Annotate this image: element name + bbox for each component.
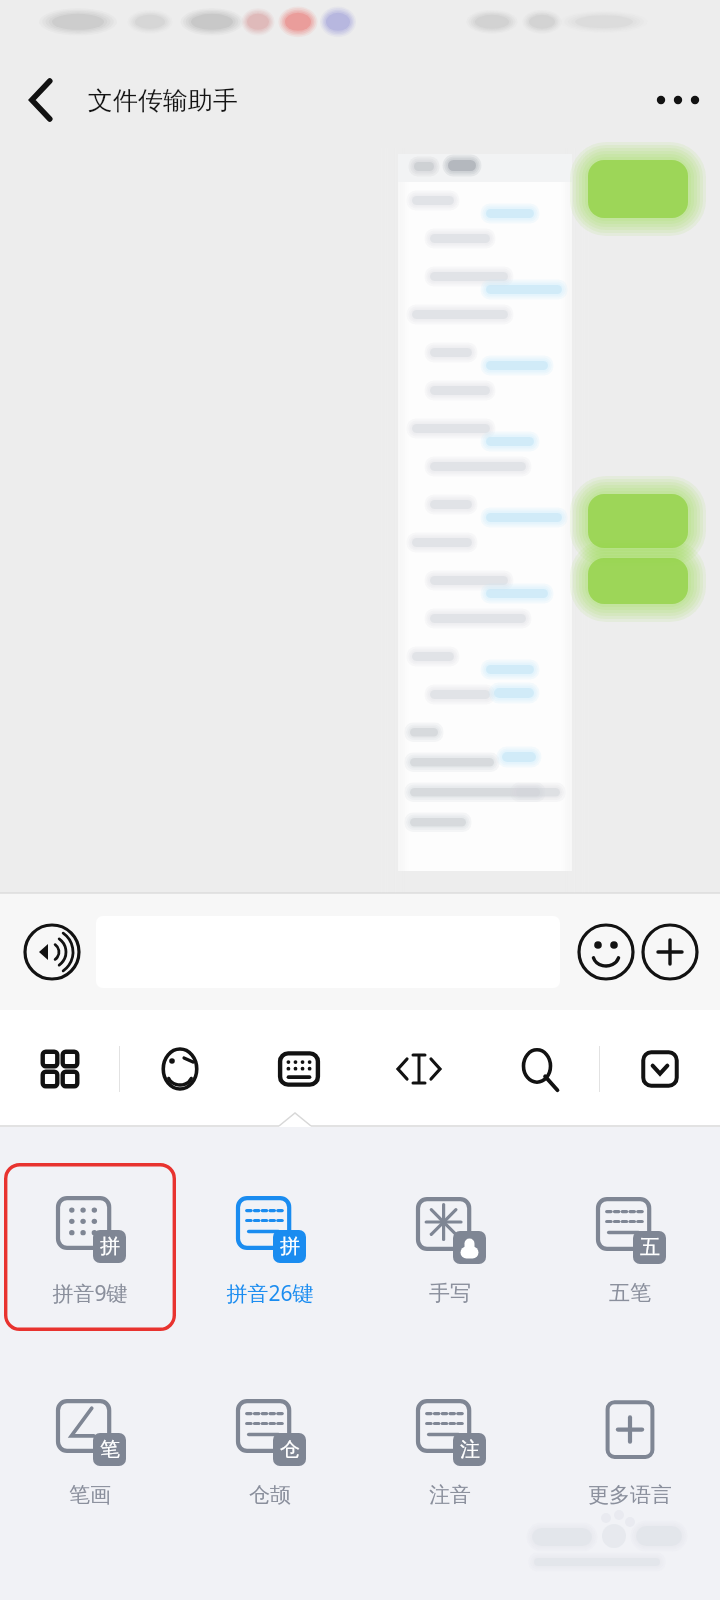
staticText: 五笔 — [609, 1280, 651, 1306]
staticText: 注音 — [429, 1482, 471, 1508]
staticText: 笔画 — [69, 1482, 111, 1508]
button[interactable]: Emoji — [574, 920, 638, 984]
staticText: 拼 — [280, 1234, 300, 1259]
button[interactable]: Voice input — [18, 918, 86, 986]
button[interactable]: Emoji — [120, 1010, 239, 1127]
button[interactable]: Search — [479, 1010, 599, 1127]
button[interactable]: 注 — [364, 1365, 536, 1533]
staticText: 仓颉 — [249, 1482, 291, 1508]
staticText: 拼音26键 — [226, 1279, 314, 1308]
staticText: 仓 — [280, 1437, 300, 1462]
button[interactable]: Back — [10, 72, 66, 128]
button[interactable]: 更多语言 — [544, 1365, 716, 1533]
staticText: 笔 — [100, 1437, 120, 1462]
button[interactable]: Toolbox — [0, 1010, 119, 1127]
staticText: 拼 — [100, 1234, 120, 1259]
staticText: 注 — [460, 1437, 480, 1462]
staticText: 手写 — [429, 1280, 471, 1306]
button[interactable]: More functions — [638, 920, 702, 984]
staticText: 更多语言 — [588, 1482, 672, 1508]
button[interactable]: Cursor control — [359, 1010, 479, 1127]
button[interactable]: 手写 — [364, 1163, 536, 1331]
staticText: 五 — [640, 1235, 660, 1260]
button[interactable]: 拼 — [184, 1163, 356, 1331]
button[interactable]: 五 — [544, 1163, 716, 1331]
button[interactable]: 笔 — [4, 1365, 176, 1533]
button[interactable]: More options — [650, 72, 706, 128]
staticText: 文件传输助手 — [88, 85, 238, 116]
button[interactable]: Hide keyboard — [600, 1010, 720, 1127]
staticText: 拼音9键 — [52, 1279, 128, 1308]
button[interactable]: 拼 — [4, 1163, 176, 1331]
button[interactable]: Keyboard layouts — [239, 1010, 359, 1127]
button[interactable]: 仓 — [184, 1365, 356, 1533]
